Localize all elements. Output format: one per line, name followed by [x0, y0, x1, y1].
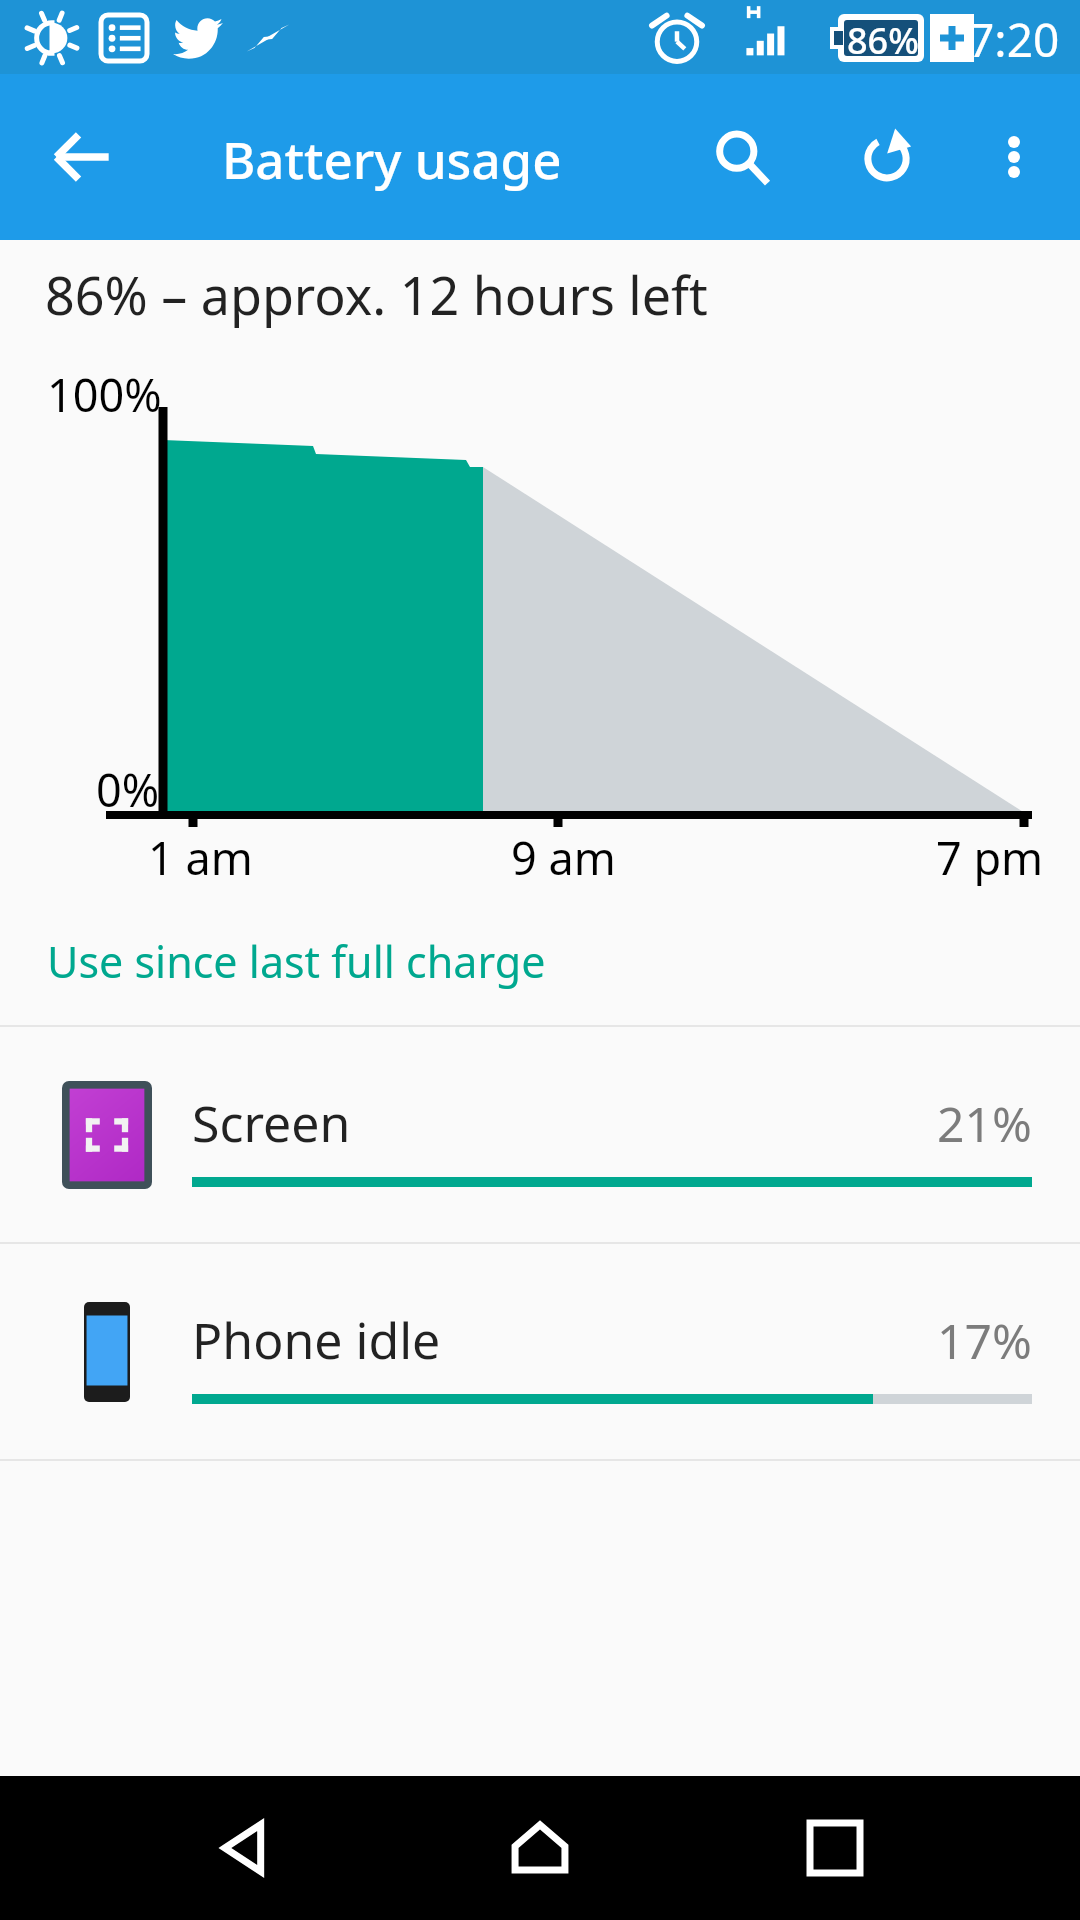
- button[interactable]: Refresh: [833, 103, 941, 211]
- button[interactable]: Search: [688, 103, 796, 211]
- button[interactable]: Phone idle: [0, 1244, 1080, 1459]
- button[interactable]: Navigate up: [28, 103, 136, 211]
- button[interactable]: Recent apps: [765, 1778, 905, 1918]
- button[interactable]: Home: [470, 1778, 610, 1918]
- staticText: 7:20: [968, 8, 1060, 71]
- button[interactable]: More options: [960, 103, 1068, 211]
- staticText: Screen: [192, 1089, 351, 1157]
- staticText: Use since last full charge: [47, 932, 546, 991]
- staticText: 1 am: [148, 827, 253, 888]
- staticText: Battery usage: [222, 124, 562, 193]
- button[interactable]: Screen: [0, 1027, 1080, 1242]
- staticText: 0%: [96, 759, 160, 820]
- staticText: 86% – approx. 12 hours left: [45, 259, 708, 330]
- staticText: 86%: [847, 16, 919, 65]
- staticText: 21%: [937, 1091, 1032, 1156]
- button[interactable]: Back: [175, 1778, 315, 1918]
- staticText: 9 am: [511, 827, 616, 888]
- staticText: Phone idle: [192, 1306, 441, 1374]
- staticText: 7 pm: [936, 827, 1044, 888]
- staticText: 100%: [47, 364, 162, 425]
- staticText: 17%: [937, 1308, 1032, 1373]
